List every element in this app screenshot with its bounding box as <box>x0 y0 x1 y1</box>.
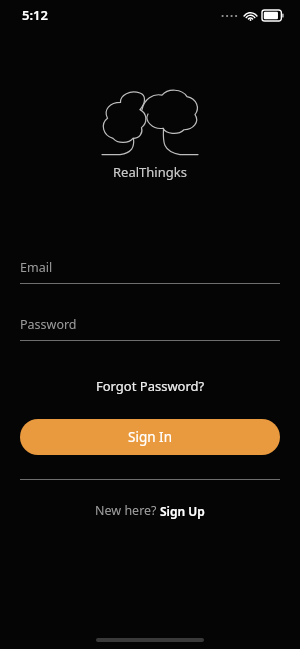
button[interactable]: Sign In <box>20 419 280 455</box>
staticText: New here? <box>95 502 160 519</box>
staticText: RealThingks <box>113 163 187 181</box>
button[interactable]: Password <box>20 316 280 341</box>
staticText: Password <box>20 316 77 333</box>
staticText: Forgot Password? <box>96 377 205 395</box>
button[interactable]: Email <box>20 259 280 284</box>
staticText: Sign Up <box>160 503 205 519</box>
staticText: Sign In <box>128 428 172 446</box>
button[interactable]: Forgot Password? <box>88 373 213 399</box>
button[interactable]: Sign Up <box>160 503 205 519</box>
staticText: 5:12 <box>22 6 48 24</box>
staticText: Email <box>20 259 53 276</box>
